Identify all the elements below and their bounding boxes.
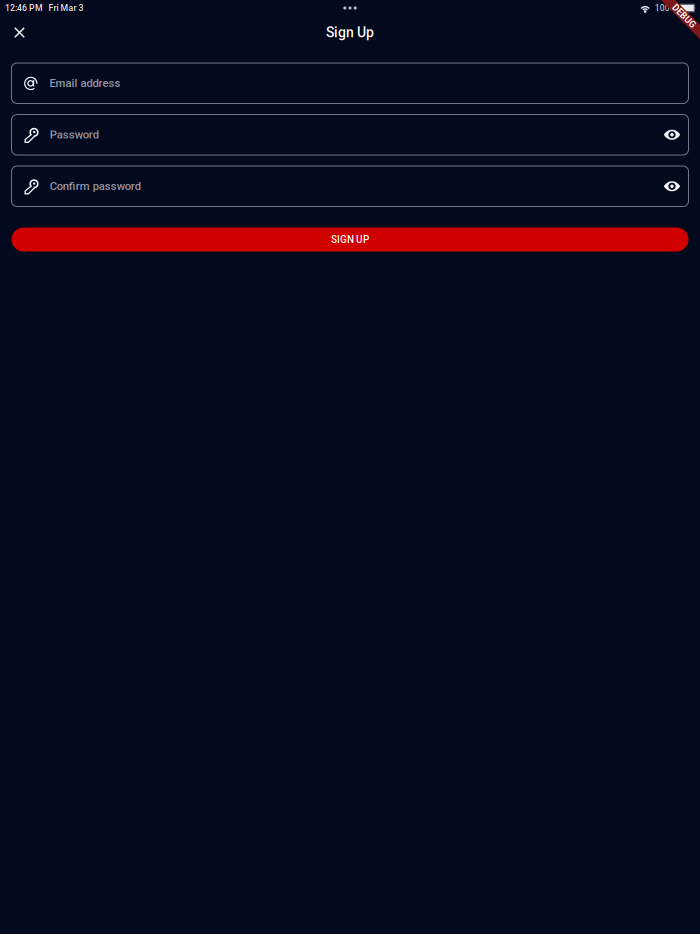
staticText: Email address [49, 77, 120, 90]
staticText: Fri Mar 3 [48, 3, 83, 13]
staticText: 100% [655, 3, 676, 13]
staticText: Password [50, 128, 99, 141]
button[interactable]: SIGN UP [11, 227, 688, 251]
staticText: Confirm password [50, 180, 141, 193]
staticText: Sign Up [326, 24, 374, 41]
staticText: 12:46 PM [5, 3, 43, 13]
button[interactable]: Show confirm password [661, 175, 683, 197]
staticText: SIGN UP [331, 234, 369, 245]
button[interactable]: Show password [661, 124, 683, 146]
staticText: DEBUG [669, 10, 698, 21]
button[interactable]: Close [1, 16, 37, 48]
